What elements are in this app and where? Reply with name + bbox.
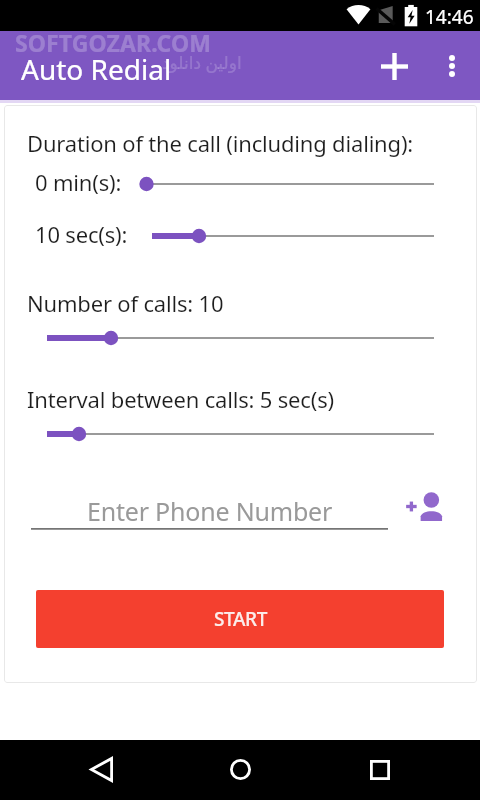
button[interactable] (4, 327, 477, 349)
staticText: 14:46 (425, 4, 474, 30)
button[interactable]: START (36, 590, 444, 648)
staticText: 0 min(s): (35, 167, 122, 197)
staticText: Auto Redial (21, 50, 172, 88)
button[interactable]: Enter Phone Number (31, 490, 388, 530)
button[interactable]: Add contact (397, 479, 451, 533)
button[interactable]: Recents (355, 745, 405, 795)
button[interactable] (4, 225, 477, 247)
button[interactable]: Back (76, 744, 126, 794)
staticText: اولین دانلود (162, 51, 242, 74)
button[interactable] (4, 173, 477, 195)
staticText: Number of calls: 10 (27, 288, 224, 318)
staticText: Interval between calls: 5 sec(s) (27, 384, 334, 414)
staticText: SOFTGOZAR.COM (15, 27, 212, 58)
staticText: Duration of the call (including dialing)… (27, 128, 414, 158)
button[interactable]: More options (428, 42, 476, 90)
button[interactable]: Home (215, 744, 265, 794)
staticText: START (214, 606, 267, 632)
button[interactable] (4, 423, 477, 445)
staticText: 10 sec(s): (35, 219, 128, 249)
staticText: Enter Phone Number (87, 494, 333, 528)
button[interactable]: Add (370, 42, 418, 90)
